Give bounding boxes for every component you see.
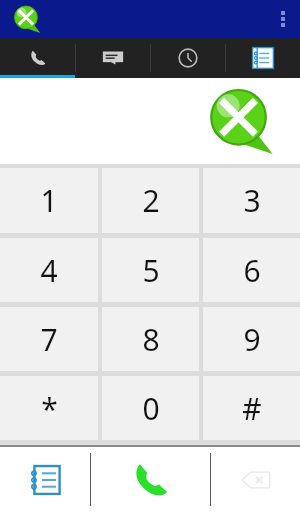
button[interactable]: 8 <box>102 307 199 371</box>
button[interactable]: More options <box>266 0 300 38</box>
button[interactable]: Recents <box>151 38 225 78</box>
staticText: 4 <box>40 250 58 291</box>
button[interactable]: * <box>0 376 98 440</box>
button[interactable]: 0 <box>102 376 199 440</box>
staticText: # <box>242 388 262 429</box>
button[interactable]: 5 <box>102 238 199 302</box>
staticText: 3 <box>243 180 261 221</box>
staticText: 0 <box>142 388 160 429</box>
button[interactable]: 9 <box>203 307 300 371</box>
button[interactable]: 2 <box>102 168 199 233</box>
button[interactable]: App logo <box>14 6 40 32</box>
button[interactable]: Notes <box>0 447 90 512</box>
staticText: 8 <box>142 319 160 360</box>
button[interactable]: Dialer <box>0 38 75 78</box>
staticText: 2 <box>142 180 160 221</box>
staticText: * <box>41 388 58 429</box>
staticText: 7 <box>40 319 58 360</box>
button[interactable]: # <box>203 376 300 440</box>
staticText: 6 <box>243 250 261 291</box>
staticText: 9 <box>243 319 261 360</box>
button[interactable]: Notes <box>226 38 300 78</box>
button[interactable]: 7 <box>0 307 98 371</box>
button[interactable]: Messages <box>76 38 150 78</box>
button[interactable]: 1 <box>0 168 98 233</box>
button[interactable]: 3 <box>203 168 300 233</box>
button[interactable]: 4 <box>0 238 98 302</box>
staticText: 5 <box>142 250 160 291</box>
staticText: 1 <box>40 180 58 221</box>
button[interactable]: 6 <box>203 238 300 302</box>
button[interactable]: Call <box>91 447 210 512</box>
